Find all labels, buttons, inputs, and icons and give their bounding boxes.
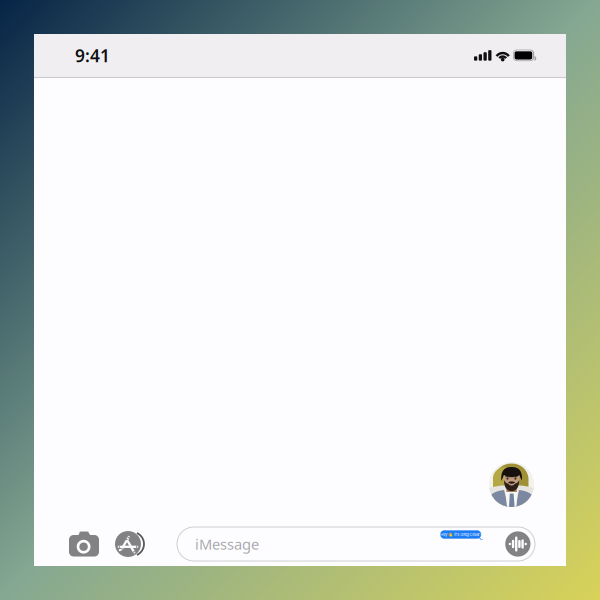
- button[interactable]: Camera: [69, 524, 115, 564]
- button[interactable]: Apps: [115, 524, 177, 564]
- staticText: iMessage: [195, 534, 259, 554]
- staticText: 9:41: [75, 44, 110, 67]
- button[interactable]: Record audio: [505, 531, 530, 557]
- staticText: Hey 👋 it's Greg Cesar!: [440, 532, 481, 537]
